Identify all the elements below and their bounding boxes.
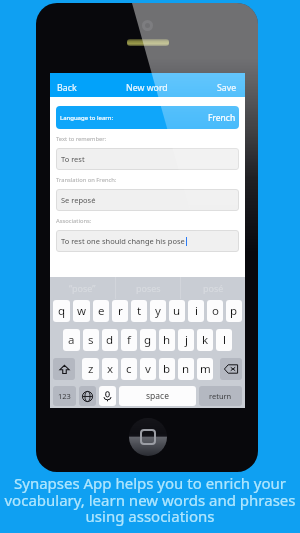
button[interactable]: j [178, 329, 194, 351]
staticText: a [68, 332, 75, 348]
staticText: Back [57, 82, 77, 94]
staticText: m [200, 361, 211, 377]
staticText: i [195, 303, 198, 319]
staticText: poses [136, 282, 161, 294]
staticText: l [223, 332, 226, 348]
staticText: n [182, 361, 190, 377]
button[interactable]: b [159, 358, 175, 380]
staticText: 123 [58, 391, 71, 401]
button[interactable]: m [197, 358, 213, 380]
staticText: j [185, 332, 188, 348]
button[interactable]: Switch keyboard [79, 386, 96, 406]
staticText: Language to learn: [60, 114, 114, 122]
button[interactable]: k [197, 329, 213, 351]
button[interactable]: n [178, 358, 194, 380]
button[interactable]: x [102, 358, 118, 380]
staticText: r [118, 303, 123, 319]
staticText: x [107, 361, 114, 377]
button[interactable]: a [63, 329, 80, 351]
staticText: Associations: [56, 217, 92, 225]
button[interactable]: l [216, 329, 232, 351]
staticText: “pose” [69, 282, 96, 294]
button[interactable]: To rest one should change his pose [56, 230, 239, 252]
staticText: Se reposé [61, 195, 96, 205]
button[interactable]: Shift [53, 358, 75, 380]
button[interactable]: u [169, 300, 185, 322]
button[interactable]: Home [129, 418, 167, 456]
button[interactable]: q [53, 300, 70, 322]
staticText: z [88, 361, 94, 377]
staticText: e [98, 303, 105, 319]
button[interactable]: space [119, 386, 196, 406]
staticText: space [146, 390, 169, 402]
staticText: Synapses App helps you to enrich your vo… [4, 473, 296, 526]
staticText: Save [217, 82, 237, 94]
button[interactable]: i [188, 300, 204, 322]
staticText: Text to remember: [56, 135, 107, 143]
button[interactable]: r [112, 300, 128, 322]
staticText: f [127, 332, 131, 348]
staticText: w [77, 303, 87, 319]
button[interactable]: y [150, 300, 166, 322]
button[interactable]: g [140, 329, 156, 351]
staticText: q [58, 303, 66, 319]
button[interactable]: h [159, 329, 175, 351]
button[interactable]: v [140, 358, 156, 380]
button[interactable]: c [121, 358, 137, 380]
staticText: u [173, 303, 181, 319]
staticText: t [137, 303, 142, 319]
staticText: return [209, 391, 232, 401]
staticText: g [144, 332, 152, 348]
button[interactable]: t [131, 300, 147, 322]
staticText: d [106, 332, 114, 348]
button[interactable]: return [199, 386, 242, 406]
button[interactable]: e [93, 300, 109, 322]
staticText: c [126, 361, 132, 377]
staticText: b [163, 361, 171, 377]
staticText: French [208, 112, 236, 124]
staticText: posé [203, 282, 224, 294]
staticText: New word [126, 82, 168, 94]
staticText: p [230, 303, 238, 319]
button[interactable]: o [207, 300, 223, 322]
button[interactable]: Se reposé [56, 189, 239, 211]
button[interactable]: w [73, 300, 90, 322]
button[interactable]: To rest [56, 148, 239, 170]
button[interactable]: Language to learn: [56, 106, 239, 129]
button[interactable]: f [121, 329, 137, 351]
staticText: o [212, 303, 219, 319]
staticText: h [163, 332, 171, 348]
staticText: k [202, 332, 209, 348]
button[interactable]: z [82, 358, 99, 380]
button[interactable]: Delete [220, 358, 242, 380]
staticText: s [88, 332, 94, 348]
staticText: y [155, 303, 161, 319]
button[interactable]: Back [57, 82, 77, 94]
staticText: To rest one should change his pose [61, 236, 185, 246]
staticText: Translation on French: [56, 176, 117, 184]
button[interactable]: d [102, 329, 118, 351]
button[interactable]: p [226, 300, 242, 322]
button[interactable]: s [83, 329, 99, 351]
staticText: v [145, 361, 151, 377]
button[interactable]: Save [217, 82, 237, 94]
button[interactable]: 123 [53, 386, 76, 406]
staticText: To rest [61, 154, 85, 164]
button[interactable]: Dictate [99, 386, 116, 406]
